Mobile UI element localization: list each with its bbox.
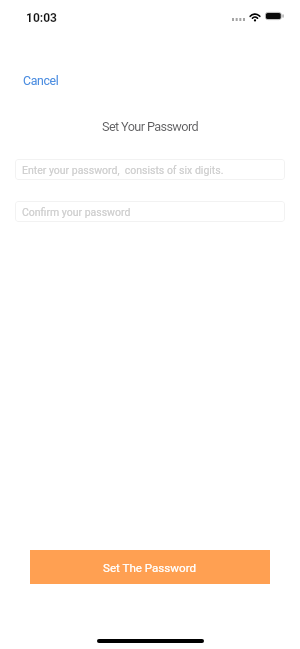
staticText: Cancel [23, 74, 59, 88]
staticText: Enter your password, consists of six dig… [22, 164, 224, 176]
other: Cellular signal [232, 18, 245, 21]
staticText: Confirm your password [22, 206, 131, 218]
other: Wi-Fi [249, 12, 261, 21]
staticText: 10:03 [26, 11, 57, 25]
button[interactable]: Confirm your password [15, 201, 285, 222]
staticText: Set Your Password [102, 119, 198, 134]
staticText: Set The Password [103, 561, 197, 575]
button[interactable]: Set The Password [30, 550, 270, 584]
button[interactable]: Enter your password, consists of six dig… [15, 159, 285, 180]
other: Battery [265, 12, 284, 20]
button[interactable]: Cancel [17, 70, 65, 92]
